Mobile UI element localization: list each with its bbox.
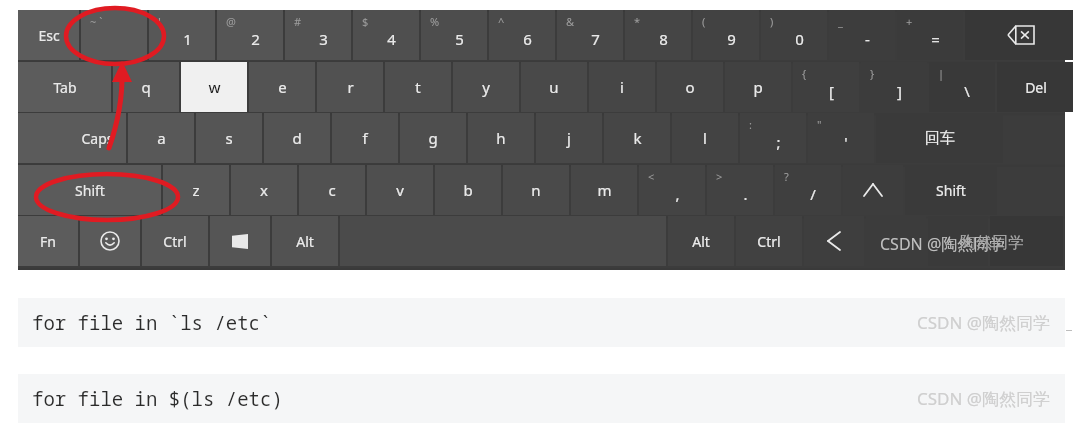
- button[interactable]: ~ `: [81, 10, 147, 60]
- staticText: w: [208, 77, 221, 97]
- button[interactable]: x: [231, 165, 297, 215]
- staticText: Del: [1025, 78, 1047, 97]
- button[interactable]: (: [693, 10, 759, 60]
- button[interactable]: Ctrl: [736, 216, 802, 266]
- button[interactable]: i: [589, 62, 655, 112]
- staticText: (: [702, 14, 706, 29]
- button[interactable]: u: [521, 62, 587, 112]
- button[interactable]: j: [536, 113, 602, 163]
- button[interactable]: z: [163, 165, 229, 215]
- button[interactable]: ": [808, 113, 874, 163]
- button[interactable]: p: [725, 62, 791, 112]
- button[interactable]: Fn: [18, 216, 78, 266]
- staticText: &: [566, 14, 575, 29]
- button[interactable]: f: [332, 113, 398, 163]
- staticText: z: [192, 180, 200, 200]
- button[interactable]: a: [128, 113, 194, 163]
- staticText: Alt: [692, 232, 710, 251]
- button[interactable]: k: [604, 113, 670, 163]
- staticText: @: [226, 14, 236, 29]
- button[interactable]: Backspace: [965, 10, 1073, 60]
- button[interactable]: :: [740, 113, 806, 163]
- button[interactable]: r: [317, 62, 383, 112]
- button[interactable]: d: [264, 113, 330, 163]
- button[interactable]: Caps: [18, 113, 126, 163]
- staticText: ': [844, 132, 848, 152]
- staticText: Fn: [40, 232, 56, 251]
- button[interactable]: |: [929, 62, 995, 112]
- button[interactable]: Shift: [905, 165, 997, 215]
- button[interactable]: h: [468, 113, 534, 163]
- button[interactable]: +: [897, 10, 963, 60]
- button[interactable]: ^: [489, 10, 555, 60]
- staticText: h: [496, 128, 506, 148]
- button[interactable]: <: [639, 165, 705, 215]
- button[interactable]: q: [113, 62, 179, 112]
- button[interactable]: >: [707, 165, 773, 215]
- staticText: ?: [784, 169, 789, 184]
- button[interactable]: Left: [804, 216, 864, 266]
- button[interactable]: y: [453, 62, 519, 112]
- staticText: q: [141, 77, 151, 97]
- button[interactable]: s: [196, 113, 262, 163]
- button[interactable]: #: [285, 10, 351, 60]
- staticText: l: [703, 128, 707, 148]
- button[interactable]: v: [367, 165, 433, 215]
- button[interactable]: n: [503, 165, 569, 215]
- staticText: a: [157, 128, 166, 148]
- button[interactable]: for file in $(ls /etc): [18, 374, 1065, 423]
- button[interactable]: ?: [775, 165, 841, 215]
- staticText: d: [292, 128, 302, 148]
- staticText: :: [749, 117, 752, 132]
- staticText: m: [597, 180, 612, 200]
- button[interactable]: 回车: [876, 113, 1003, 163]
- button[interactable]: Tab: [18, 62, 111, 112]
- button[interactable]: Shift: [18, 165, 161, 215]
- button[interactable]: Up: [843, 165, 903, 215]
- button[interactable]: w: [181, 62, 247, 112]
- button[interactable]: b: [435, 165, 501, 215]
- button[interactable]: Alt: [668, 216, 734, 266]
- button[interactable]: Alt: [272, 216, 338, 266]
- button[interactable]: *: [625, 10, 691, 60]
- staticText: 6: [523, 29, 532, 49]
- button[interactable]: [866, 216, 926, 266]
- staticText: 5: [455, 29, 464, 49]
- staticText: CSDN @陶然同学: [917, 387, 1051, 410]
- button[interactable]: Windows: [210, 216, 270, 266]
- button[interactable]: $: [353, 10, 419, 60]
- staticText: ]: [897, 81, 902, 101]
- staticText: /: [810, 184, 816, 204]
- staticText: ;: [776, 132, 781, 152]
- button[interactable]: e: [249, 62, 315, 112]
- staticText: c: [328, 180, 336, 200]
- button[interactable]: [990, 216, 1063, 266]
- staticText: [: [829, 81, 834, 101]
- button[interactable]: &: [557, 10, 623, 60]
- staticText: |: [938, 66, 945, 81]
- button[interactable]: t: [385, 62, 451, 112]
- button[interactable]: c: [299, 165, 365, 215]
- button[interactable]: o: [657, 62, 723, 112]
- button[interactable]: ): [761, 10, 827, 60]
- button[interactable]: [928, 216, 988, 266]
- staticText: 4: [387, 29, 396, 49]
- button[interactable]: l: [672, 113, 738, 163]
- button[interactable]: for file in `ls /etc`: [18, 298, 1065, 347]
- button[interactable]: {: [793, 62, 859, 112]
- button[interactable]: }: [861, 62, 927, 112]
- button[interactable]: g: [400, 113, 466, 163]
- staticText: #: [294, 14, 302, 29]
- button[interactable]: !: [149, 10, 215, 60]
- staticText: +: [906, 14, 913, 29]
- button[interactable]: @: [217, 10, 283, 60]
- staticText: Alt: [296, 232, 314, 251]
- button[interactable]: Ctrl: [142, 216, 208, 266]
- button[interactable]: m: [571, 165, 637, 215]
- button[interactable]: Del: [997, 62, 1073, 112]
- button[interactable]: Emoji: [80, 216, 140, 266]
- button[interactable]: %: [421, 10, 487, 60]
- button[interactable]: Esc: [18, 10, 79, 60]
- button[interactable]: _: [829, 10, 895, 60]
